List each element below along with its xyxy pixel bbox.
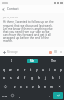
button[interactable]: I (0, 56, 22, 66)
staticText: w (9, 68, 12, 72)
staticText: f (24, 76, 26, 80)
button[interactable]: f (21, 74, 28, 82)
staticText: . (49, 94, 50, 98)
staticText: c (26, 85, 28, 89)
button[interactable]: z (11, 82, 18, 91)
button[interactable]: s (7, 74, 14, 82)
button[interactable]: The (43, 56, 64, 66)
button[interactable]: Me (30, 59, 35, 63)
button[interactable]: v (30, 82, 36, 91)
button[interactable]: Add (1, 49, 7, 55)
staticText: i (49, 68, 50, 72)
button[interactable]: d (14, 74, 21, 82)
button[interactable]: Shift (0, 82, 11, 91)
staticText: b (38, 85, 40, 89)
staticText: h (38, 76, 40, 80)
button[interactable]: n (42, 82, 48, 91)
button[interactable]: i (46, 66, 52, 74)
staticText: g (31, 76, 33, 80)
button[interactable]: Emoji (9, 91, 16, 100)
staticText: s (10, 76, 12, 80)
staticText: u (42, 68, 44, 72)
button[interactable]: e (14, 66, 21, 74)
staticText: Me (30, 59, 35, 63)
staticText: The (51, 59, 56, 63)
staticText: v (32, 85, 34, 89)
staticText: j (45, 76, 46, 80)
staticText: r (24, 68, 26, 72)
button[interactable]: , (16, 91, 22, 100)
button[interactable]: a (0, 74, 7, 82)
staticText: o (54, 68, 56, 72)
button[interactable]: o (52, 66, 58, 74)
staticText: t (30, 68, 32, 72)
staticText: ?123 (2, 94, 8, 97)
button[interactable]: q (0, 66, 7, 74)
staticText: x (20, 85, 22, 89)
button[interactable]: t (28, 66, 34, 74)
button[interactable]: k (49, 74, 56, 82)
button[interactable]: r (21, 66, 28, 74)
staticText: e (17, 68, 19, 72)
button[interactable]: Camera (53, 49, 58, 54)
staticText: d (17, 76, 19, 80)
button[interactable]: b (36, 82, 42, 91)
staticText: q (3, 68, 5, 72)
staticText: y (36, 68, 38, 72)
staticText: Contact (7, 7, 19, 11)
button[interactable]: c (24, 82, 30, 91)
button[interactable]: h (35, 74, 42, 82)
staticText: Jan 12, 2:45 PM (3, 16, 18, 19)
button[interactable]: Microphone (58, 49, 63, 54)
staticText: p (60, 68, 62, 72)
staticText: k (52, 76, 54, 80)
button[interactable]: y (34, 66, 40, 74)
staticText: z (14, 85, 16, 89)
button[interactable]: g (28, 74, 35, 82)
button[interactable]: x (18, 82, 24, 91)
button[interactable]: ?123 (0, 91, 9, 100)
staticText: a (3, 76, 5, 80)
button[interactable]: u (40, 66, 46, 74)
button[interactable]: Sticker (47, 49, 53, 55)
staticText: Hi there, I wanted to follow up on the r… (3, 20, 54, 42)
button[interactable]: Enter (53, 92, 63, 99)
button[interactable]: Back (0, 6, 7, 13)
staticText: m (50, 85, 53, 89)
staticText: l (59, 76, 60, 80)
button[interactable]: . (46, 91, 52, 100)
staticText: n (44, 85, 46, 89)
button[interactable]: j (42, 74, 49, 82)
staticText: , (19, 94, 20, 98)
staticText: I (11, 59, 12, 63)
staticText: Message (7, 50, 18, 54)
button[interactable]: m (48, 82, 54, 91)
button[interactable]: p (58, 66, 64, 74)
button[interactable]: w (7, 66, 14, 74)
button[interactable]: Backspace (54, 82, 64, 91)
button[interactable]: l (56, 74, 63, 82)
